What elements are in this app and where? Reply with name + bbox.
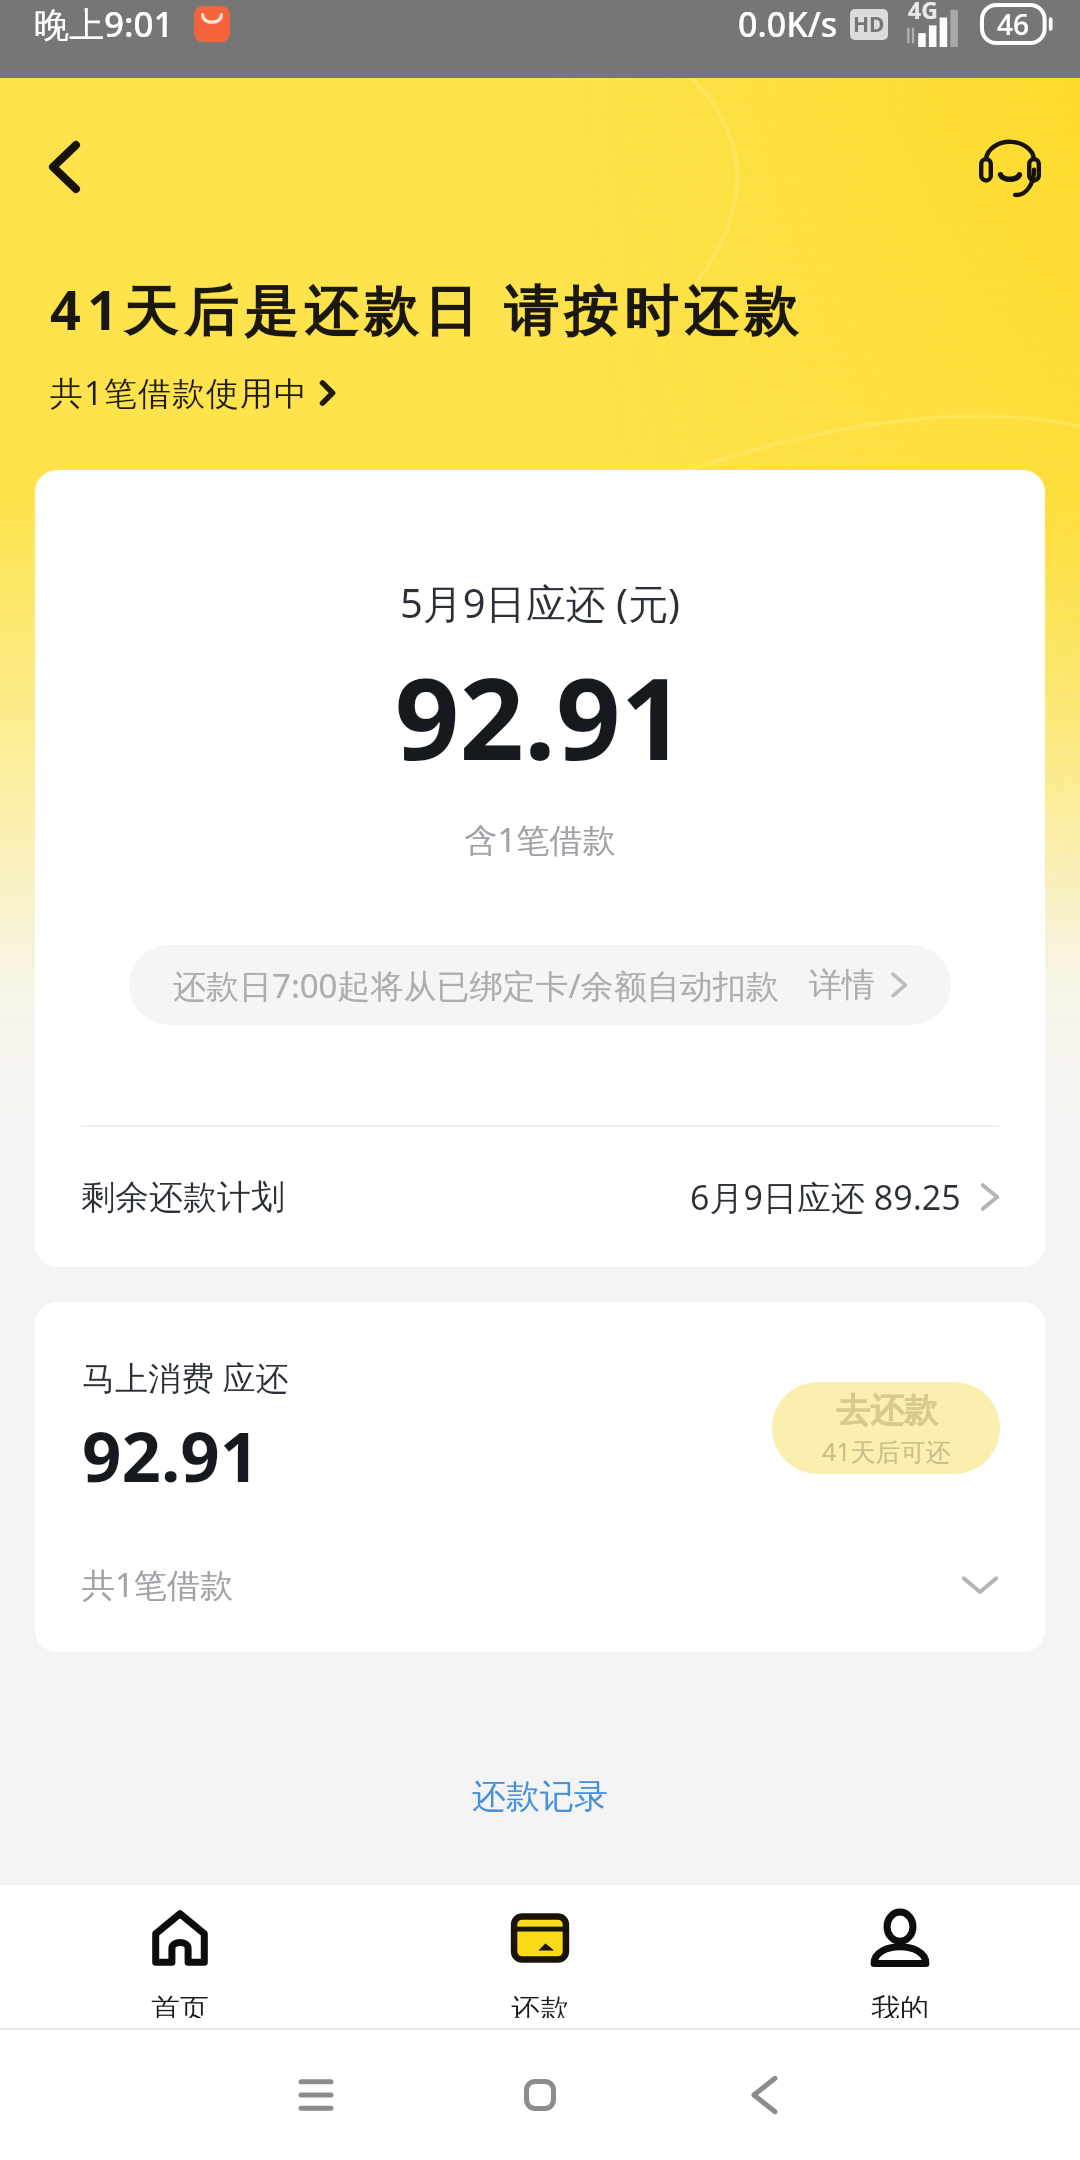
button[interactable]: Customer service [962, 119, 1058, 215]
staticText: 我的 [871, 1991, 929, 2018]
staticText: 去还款 [836, 1389, 938, 1432]
staticText: 92.91 [35, 639, 1045, 793]
button[interactable]: 剩余还款计划 [35, 1127, 1045, 1267]
button[interactable]: Back [21, 123, 109, 211]
staticText: 92.91 [82, 1408, 260, 1502]
staticText: 晚上9:01 [34, 0, 174, 48]
staticText: 首页 [151, 1991, 209, 2018]
staticText: 还款 [511, 1991, 569, 2018]
staticText: 详情 [809, 964, 875, 1006]
staticText: 0.0K/s [738, 1, 838, 47]
staticText: 6月9日应还 89.25 [690, 1174, 961, 1220]
button[interactable]: Home [504, 2059, 576, 2131]
staticText: 46 [997, 5, 1030, 43]
staticText: HD [853, 10, 885, 39]
button[interactable]: 共1笔借款 [35, 1562, 1045, 1652]
staticText: 共1笔借款使用中 [50, 370, 308, 415]
staticText: 共1笔借款 [82, 1562, 233, 1607]
button[interactable]: Back [728, 2059, 800, 2131]
button[interactable]: Recents [280, 2059, 352, 2131]
staticText: 4G [908, 0, 938, 25]
staticText: 还款日7:00起将从已绑定卡/余额自动扣款 [173, 963, 779, 1008]
button[interactable]: 共1笔借款使用中 [50, 370, 341, 415]
button[interactable]: 去还款 [772, 1382, 1000, 1474]
staticText: 剩余还款计划 [81, 1176, 285, 1219]
staticText: 41天后是还款日 请按时还款 [50, 272, 804, 346]
staticText: 5月9日应还 (元) [35, 575, 1045, 630]
staticText: 41天后可还 [822, 1434, 951, 1468]
staticText: 马上消费 应还 [82, 1355, 289, 1400]
button[interactable]: 还款 [360, 1885, 720, 2030]
button[interactable]: 还款日7:00起将从已绑定卡/余额自动扣款 [129, 945, 951, 1025]
button[interactable]: 首页 [0, 1885, 360, 2030]
button[interactable]: 我的 [720, 1885, 1080, 2030]
staticText: 含1笔借款 [35, 817, 1045, 862]
button[interactable]: 还款记录 [0, 1775, 1080, 1818]
